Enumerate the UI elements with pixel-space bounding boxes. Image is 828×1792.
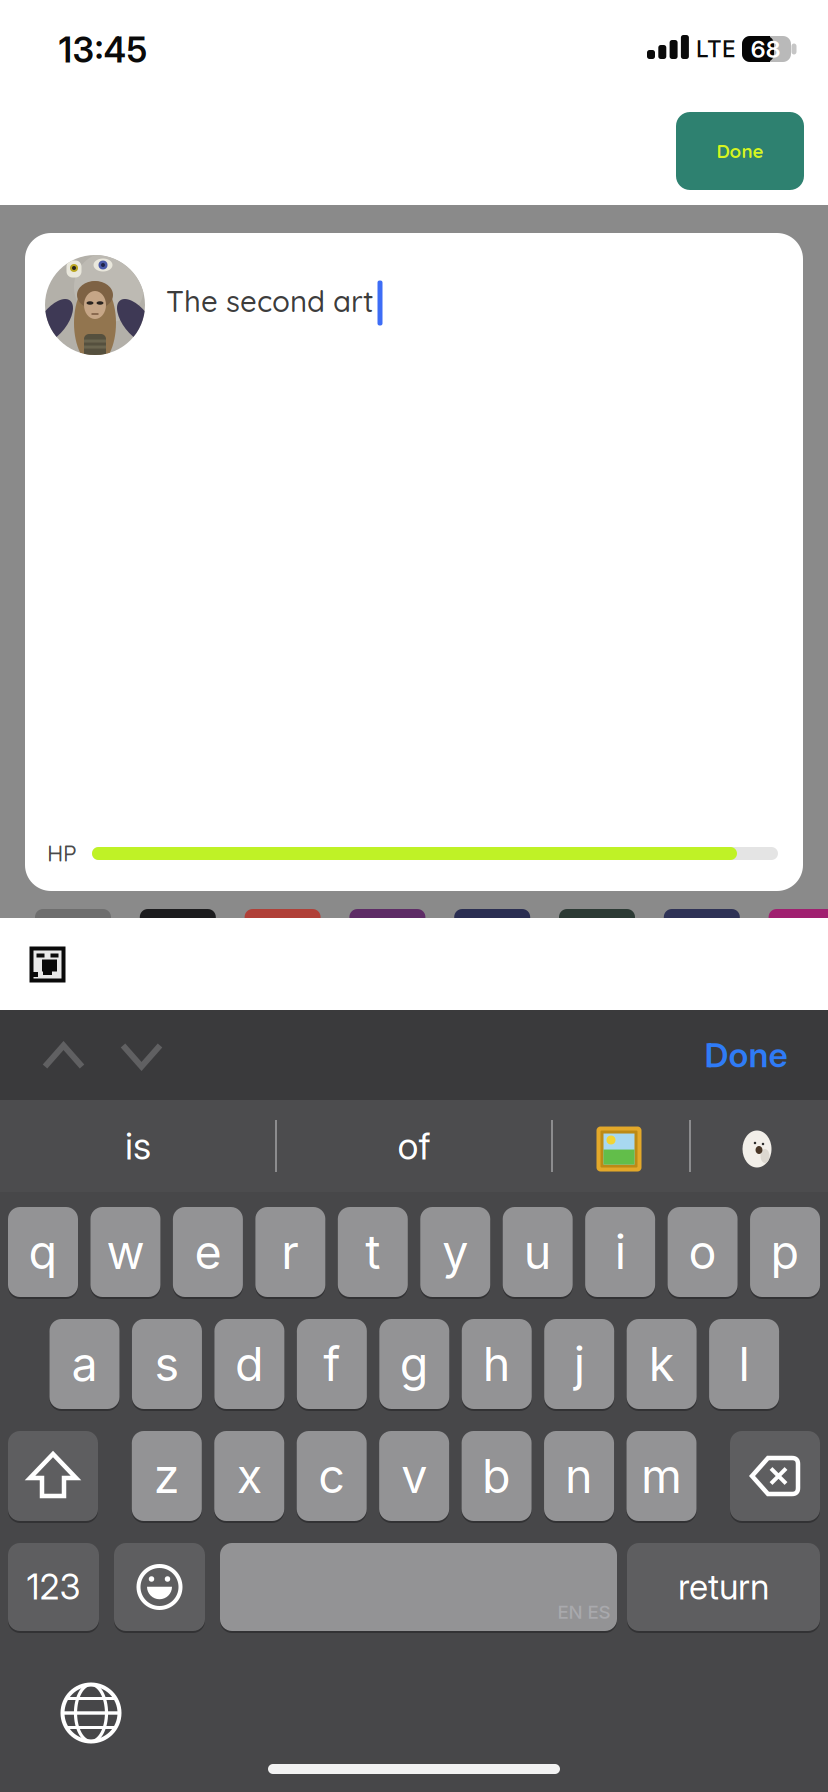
staticText: n — [565, 1448, 593, 1504]
button[interactable]: s — [132, 1318, 202, 1410]
button[interactable]: f — [297, 1318, 367, 1410]
staticText: a — [71, 1336, 97, 1392]
staticText: p — [771, 1224, 800, 1280]
staticText: v — [401, 1448, 427, 1504]
staticText: f — [323, 1336, 340, 1392]
staticText: HP — [47, 839, 77, 867]
button[interactable]: h — [462, 1318, 532, 1410]
button[interactable]: b — [462, 1430, 532, 1522]
button[interactable]: return — [627, 1542, 820, 1632]
staticText: g — [400, 1336, 429, 1392]
button[interactable]: l — [709, 1318, 779, 1410]
button[interactable]: m — [626, 1430, 696, 1522]
button[interactable]: of — [279, 1100, 549, 1192]
staticText: s — [154, 1336, 179, 1392]
button[interactable]: Emoji — [114, 1542, 205, 1632]
button[interactable]: e — [173, 1206, 243, 1298]
staticText: o — [689, 1224, 717, 1280]
staticText: EN ES — [557, 1601, 610, 1623]
staticText: y — [442, 1224, 468, 1280]
button[interactable]: k — [627, 1318, 697, 1410]
button[interactable]: 123 — [8, 1542, 99, 1632]
button[interactable]: u — [503, 1206, 573, 1298]
button[interactable]: v — [379, 1430, 449, 1522]
button[interactable]: is — [3, 1100, 273, 1192]
staticText: The second art — [166, 283, 374, 319]
staticText: u — [524, 1224, 552, 1280]
button[interactable]: Next field — [123, 1045, 160, 1066]
staticText: 13:45 — [58, 29, 147, 71]
button[interactable]: Space — [220, 1542, 617, 1632]
button[interactable]: n — [544, 1430, 614, 1522]
staticText: w — [106, 1224, 144, 1280]
button[interactable]: r — [255, 1206, 325, 1298]
button[interactable]: Delete — [730, 1430, 820, 1522]
button[interactable]: x — [214, 1430, 284, 1522]
button[interactable]: Egg emoji — [742, 1130, 771, 1167]
staticText: k — [649, 1336, 675, 1392]
button[interactable]: w — [90, 1206, 160, 1298]
staticText: 68 — [750, 34, 780, 63]
staticText: m — [641, 1448, 682, 1504]
staticText: b — [482, 1448, 511, 1504]
staticText: Done — [716, 139, 763, 163]
staticText: z — [154, 1448, 180, 1504]
staticText: q — [28, 1224, 57, 1280]
staticText: LTE — [696, 35, 736, 63]
staticText: return — [678, 1566, 769, 1608]
button[interactable]: Image — [29, 946, 65, 982]
button[interactable]: Done — [676, 112, 804, 190]
button[interactable]: y — [420, 1206, 490, 1298]
button[interactable]: i — [585, 1206, 655, 1298]
staticText: h — [483, 1336, 511, 1392]
staticText: x — [237, 1448, 262, 1504]
button[interactable]: o — [668, 1206, 738, 1298]
button[interactable]: c — [297, 1430, 367, 1522]
staticText: e — [194, 1224, 221, 1280]
staticText: is — [125, 1123, 151, 1169]
staticText: of — [397, 1123, 430, 1169]
button[interactable]: d — [214, 1318, 284, 1410]
staticText: j — [574, 1336, 585, 1392]
button[interactable]: Shift — [8, 1430, 98, 1522]
staticText: i — [615, 1224, 626, 1280]
staticText: t — [365, 1224, 380, 1280]
staticText: 123 — [26, 1566, 80, 1608]
button[interactable]: q — [8, 1206, 78, 1298]
button[interactable]: Done — [704, 1034, 787, 1075]
staticText: d — [235, 1336, 264, 1392]
staticText: Done — [704, 1034, 787, 1075]
button[interactable]: Previous field — [45, 1045, 82, 1066]
button[interactable]: t — [338, 1206, 408, 1298]
button[interactable]: Picture emoji — [596, 1126, 641, 1171]
button[interactable]: z — [132, 1430, 202, 1522]
button[interactable]: g — [379, 1318, 449, 1410]
staticText: r — [281, 1224, 299, 1280]
button[interactable]: a — [49, 1318, 119, 1410]
staticText: c — [318, 1448, 345, 1504]
staticText: l — [739, 1336, 750, 1392]
button[interactable]: p — [750, 1206, 820, 1298]
button[interactable]: Next keyboard — [60, 1682, 122, 1744]
button[interactable]: j — [544, 1318, 614, 1410]
